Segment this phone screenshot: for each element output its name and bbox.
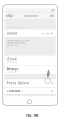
staticText: Include — [7, 32, 18, 35]
button[interactable]: Exchange — [5, 65, 56, 75]
button[interactable]: iCloud — [5, 55, 56, 65]
staticText: Customize… — [7, 89, 23, 93]
staticText: the lock screen. — [7, 44, 18, 46]
staticText: iCloud — [7, 57, 17, 61]
button[interactable]: Include — [5, 29, 56, 37]
button[interactable]: Mail — [5, 13, 14, 19]
staticText: Notification Center — [24, 15, 39, 17]
staticText: 5 Unread Items — [41, 32, 51, 34]
staticText: 1:27 PM — [29, 9, 34, 11]
button[interactable]: Customize… — [5, 87, 56, 94]
staticText: Mail — [8, 14, 13, 18]
staticText: Notification Center when it is not — [7, 42, 26, 44]
staticText: Exchange — [7, 67, 19, 71]
staticText: Show alerts on the lock screen for — [7, 40, 30, 42]
staticText: Phone Options — [7, 81, 29, 85]
staticText: Edit — [49, 14, 54, 18]
staticText: Badges, Alerts — [7, 61, 17, 63]
button[interactable]: Phone Options — [5, 79, 56, 87]
staticText: SHOW IN NOTIFICATION CENTER — [7, 26, 27, 28]
staticText: Badges, Alerts — [7, 71, 17, 73]
staticText: FIG. 9B — [25, 112, 38, 118]
button[interactable]: Edit — [49, 13, 56, 19]
